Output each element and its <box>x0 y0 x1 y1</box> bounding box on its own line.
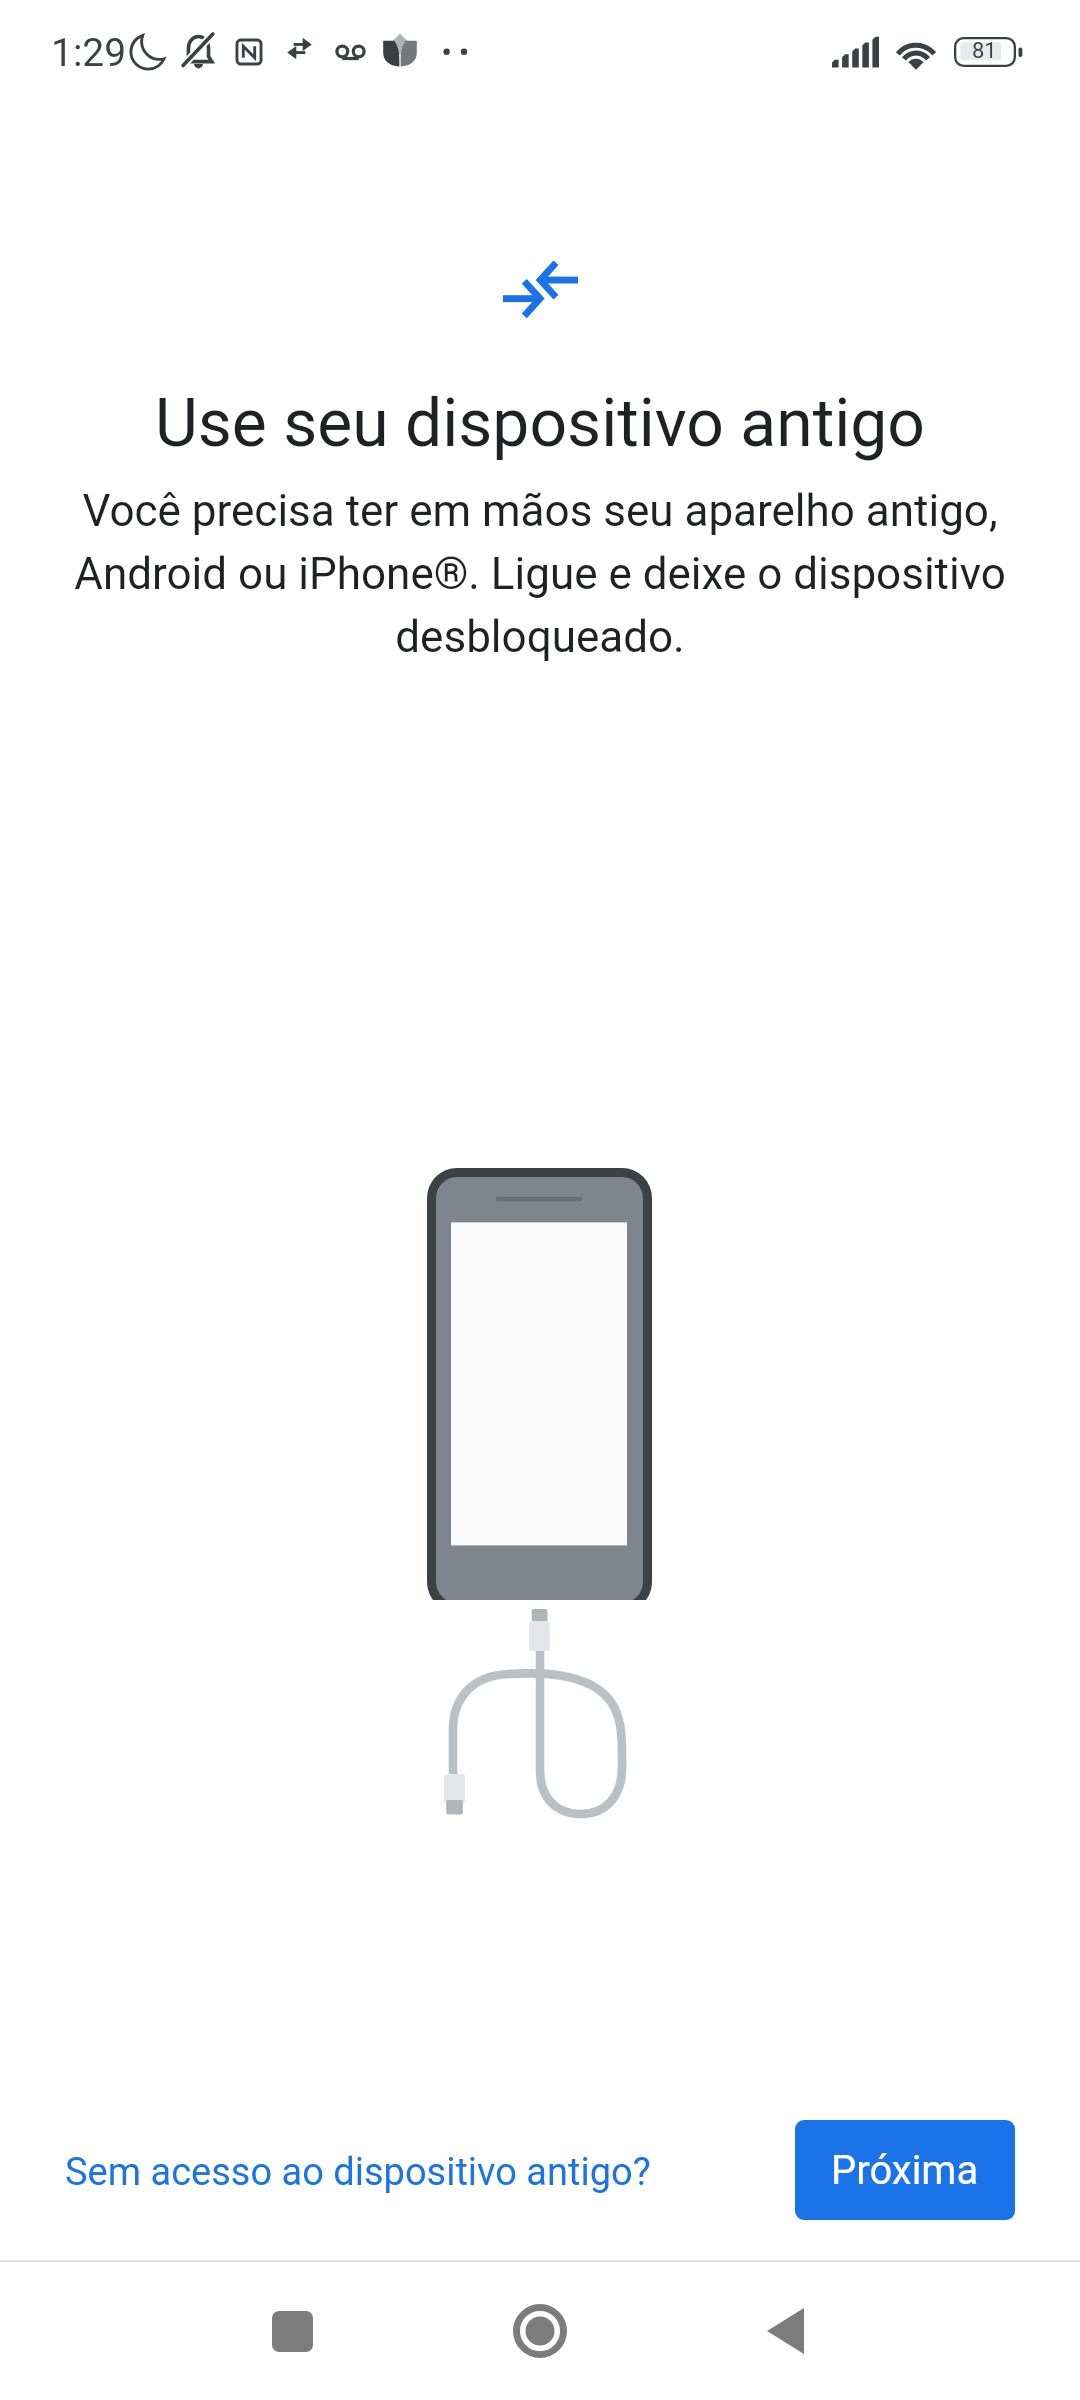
button[interactable]: Back <box>716 2262 854 2400</box>
staticText: Você precisa ter em mãos seu aparelho an… <box>52 485 1028 663</box>
button[interactable]: Home <box>471 2262 609 2400</box>
button[interactable]: Próxima <box>795 2120 1015 2220</box>
staticText: 1:29 <box>51 30 127 76</box>
button[interactable]: Sem acesso ao dispositivo antigo? <box>31 2130 685 2215</box>
staticText: 81 <box>972 38 997 64</box>
staticText: Sem acesso ao dispositivo antigo? <box>65 2150 651 2195</box>
button[interactable]: Recent apps <box>223 2262 361 2400</box>
staticText: Use seu dispositivo antigo <box>0 385 1080 462</box>
staticText: Próxima <box>831 2147 979 2194</box>
